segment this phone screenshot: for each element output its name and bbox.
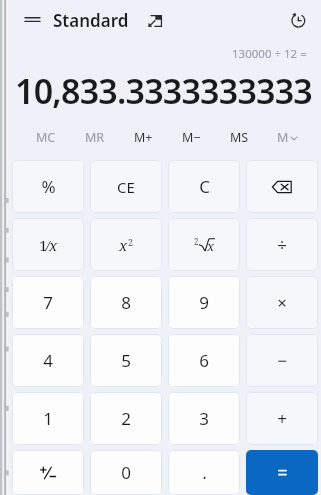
button[interactable]: 5 [90,334,162,387]
staticText: 10,833.33333333333 [15,68,317,114]
button[interactable]: × [246,276,318,329]
staticText: = [277,460,288,485]
button[interactable]: 2 [90,392,162,445]
staticText: ÷ [277,233,287,256]
button[interactable]: M− [167,126,215,148]
button[interactable]: 7 [12,276,84,329]
button[interactable]: 8 [90,276,162,329]
staticText: 3 [199,407,209,430]
staticText: 5 [121,349,131,372]
button[interactable]: History [283,5,313,35]
button[interactable]: 4 [12,334,84,387]
staticText: MC [36,129,56,146]
button[interactable]: Square root [168,218,240,271]
button[interactable]: Positive negative [12,450,84,495]
button[interactable]: Memory list [263,126,311,148]
staticText: 2 [121,407,131,430]
button[interactable]: CE [90,160,162,213]
staticText: . [202,461,207,484]
staticText: MS [230,129,249,146]
staticText: 1 [43,407,53,430]
button[interactable]: 6 [168,334,240,387]
staticText: 2 [128,236,134,248]
button[interactable]: 0 [90,450,162,495]
button[interactable]: . [168,450,240,495]
staticText: % [41,175,56,198]
button[interactable]: One divided by x [12,218,84,271]
staticText: 4 [43,349,53,372]
staticText: x [49,235,58,255]
button[interactable]: Backspace [246,160,318,213]
button[interactable]: C [168,160,240,213]
button[interactable]: MS [215,126,263,148]
button[interactable]: Keep on top [141,6,169,34]
staticText: M− [182,129,201,146]
staticText: 130000 ÷ 12 = [232,46,307,62]
button[interactable]: x squared [90,218,162,271]
staticText: − [277,349,287,372]
button[interactable]: MC [21,126,70,148]
button[interactable]: 3 [168,392,240,445]
staticText: Standard [53,9,129,32]
button[interactable]: + [246,392,318,445]
button[interactable]: = [246,450,318,495]
staticText: 0 [121,461,131,484]
staticText: MR [85,129,105,146]
button[interactable]: Open navigation [17,5,47,35]
staticText: + [277,407,287,430]
button[interactable]: M+ [119,126,167,148]
button[interactable]: MR [70,126,119,148]
staticText: 2 [194,236,199,247]
staticText: CE [117,177,135,197]
staticText: 9 [199,291,209,314]
staticText: × [277,291,287,314]
staticText: 8 [121,291,131,314]
button[interactable]: ÷ [246,218,318,271]
staticText: x [119,235,128,255]
staticText: C [199,175,210,198]
button[interactable]: 1 [12,392,84,445]
button[interactable]: % [12,160,84,213]
button[interactable]: − [246,334,318,387]
button[interactable]: 9 [168,276,240,329]
staticText: M+ [134,129,153,146]
staticText: 7 [43,291,53,314]
staticText: 6 [199,349,209,372]
staticText: M [277,129,289,146]
staticText: 1⁄ [39,235,49,255]
staticText: x [207,237,215,255]
